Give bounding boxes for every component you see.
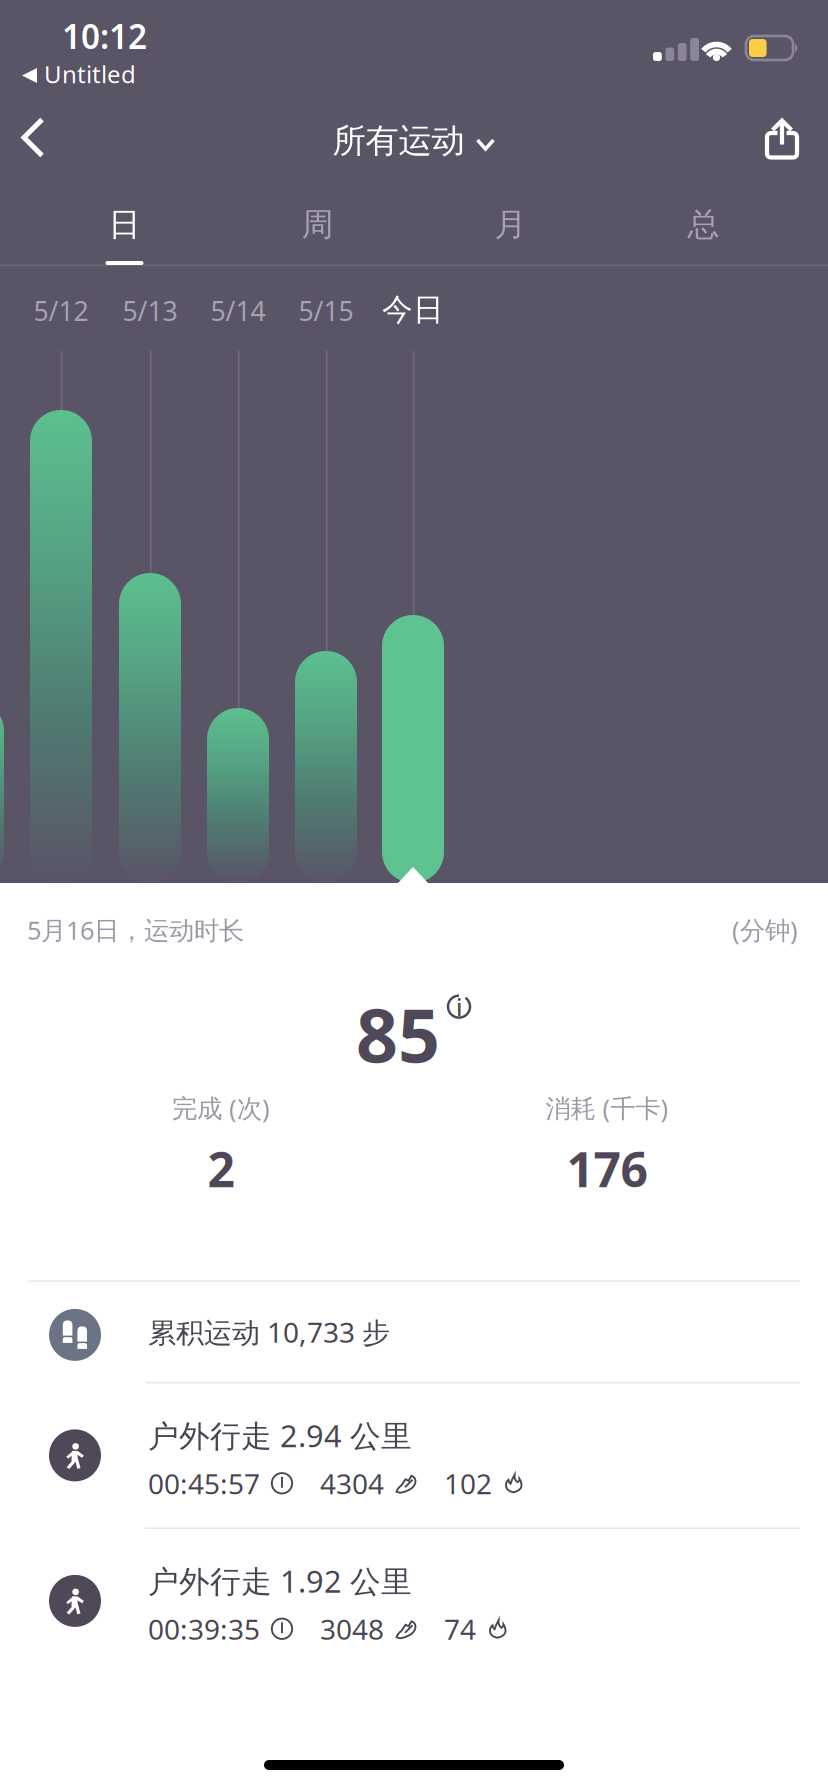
staticText: 74 xyxy=(444,1610,476,1647)
staticText: 10:12 xyxy=(62,14,147,58)
staticText: 今日 xyxy=(382,291,444,329)
staticText: 102 xyxy=(444,1465,492,1502)
staticText: 00:39:35 xyxy=(148,1610,260,1647)
staticText: 总 xyxy=(687,205,719,244)
button[interactable]: 累积运动 10,733 步 xyxy=(0,1282,828,1382)
button[interactable]: 周 xyxy=(221,186,414,266)
staticText: 2 xyxy=(207,1137,234,1200)
button[interactable]: 日 xyxy=(28,186,221,266)
staticText: 周 xyxy=(301,205,333,244)
staticText: 3048 xyxy=(320,1610,384,1647)
staticText: 消耗 (千卡) xyxy=(545,1091,668,1125)
button[interactable]: 户外行走 2.94 公里 xyxy=(0,1383,828,1527)
button[interactable]: 户外行走 1.92 公里 xyxy=(0,1529,828,1673)
staticText: 5/13 xyxy=(122,293,177,328)
button[interactable]: 所有运动 xyxy=(316,94,511,187)
staticText: 所有运动 xyxy=(332,120,464,161)
staticText: 5/14 xyxy=(210,293,265,328)
staticText: 户外行走 1.92 公里 xyxy=(148,1560,412,1601)
staticText: 户外行走 2.94 公里 xyxy=(148,1415,412,1456)
staticText: 00:45:57 xyxy=(148,1465,260,1502)
staticText: 日 xyxy=(108,205,140,244)
staticText: 4304 xyxy=(320,1465,384,1502)
staticText: 5/15 xyxy=(298,293,353,328)
staticText: 完成 (次) xyxy=(172,1091,270,1125)
button[interactable]: Share xyxy=(730,94,828,182)
staticText: 85 xyxy=(356,986,440,1083)
button[interactable]: 月 xyxy=(414,186,607,266)
staticText: (分钟) xyxy=(732,913,798,947)
button[interactable]: 总 xyxy=(607,186,800,266)
staticText: Untitled xyxy=(44,58,136,90)
staticText: 月 xyxy=(494,205,526,244)
staticText: i xyxy=(456,991,462,1023)
staticText: 累积运动 10,733 步 xyxy=(148,1313,390,1350)
staticText: 176 xyxy=(566,1137,647,1200)
staticText: 5月16日，运动时长 xyxy=(27,913,244,947)
staticText: 5/12 xyxy=(33,293,88,328)
button[interactable]: Back xyxy=(0,94,80,180)
